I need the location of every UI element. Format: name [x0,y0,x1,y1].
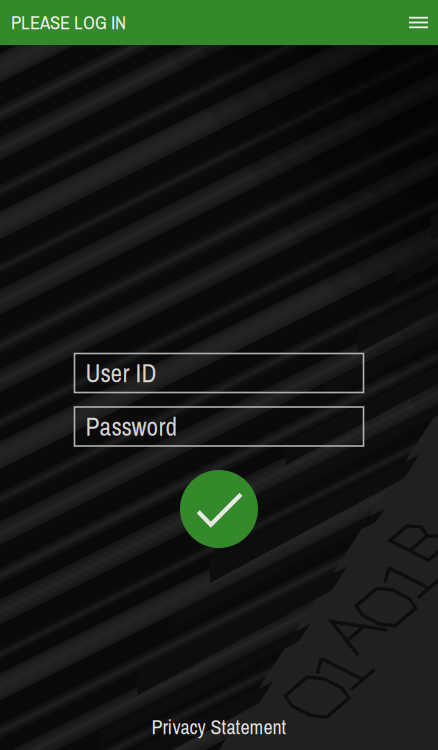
button[interactable]: Privacy Statement [135,704,302,749]
button[interactable]: Sign in [180,470,258,548]
staticText: User ID [85,356,156,390]
staticText: Privacy Statement [151,713,286,740]
staticText: Password [85,409,177,443]
staticText: PLEASE LOG IN [11,10,126,35]
button[interactable]: Menu [399,0,438,45]
